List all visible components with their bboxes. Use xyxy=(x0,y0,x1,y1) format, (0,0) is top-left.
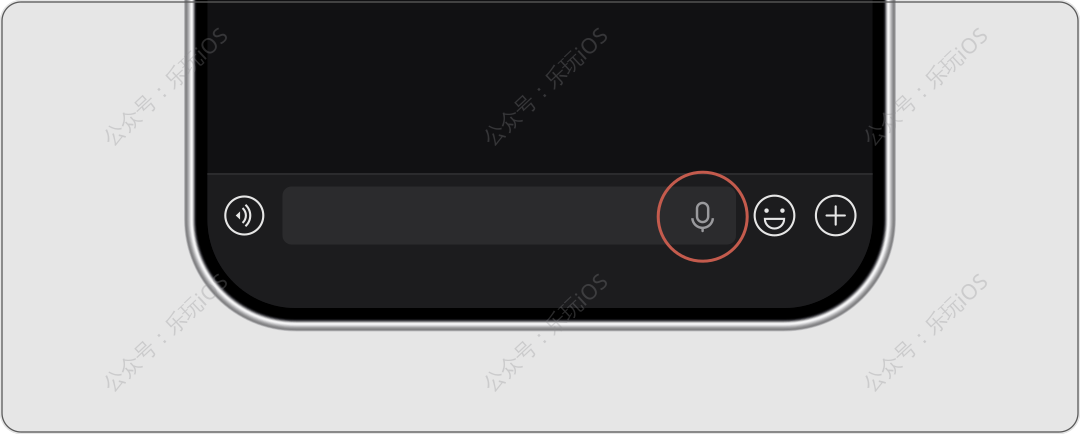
staticText: 公众号：乐玩iOS xyxy=(844,318,1005,346)
button[interactable]: Audio message xyxy=(225,196,263,234)
staticText: 公众号：乐玩iOS xyxy=(464,318,625,346)
staticText: 公众号：乐玩iOS xyxy=(844,72,1005,100)
staticText: 公众号：乐玩iOS xyxy=(464,72,625,100)
staticText: 公众号：乐玩iOS xyxy=(84,318,245,346)
staticText: 公众号：乐玩iOS xyxy=(84,72,245,100)
button[interactable]: Dictate xyxy=(680,194,726,240)
button[interactable]: Emoji xyxy=(755,196,794,235)
button[interactable]: More xyxy=(816,196,855,235)
